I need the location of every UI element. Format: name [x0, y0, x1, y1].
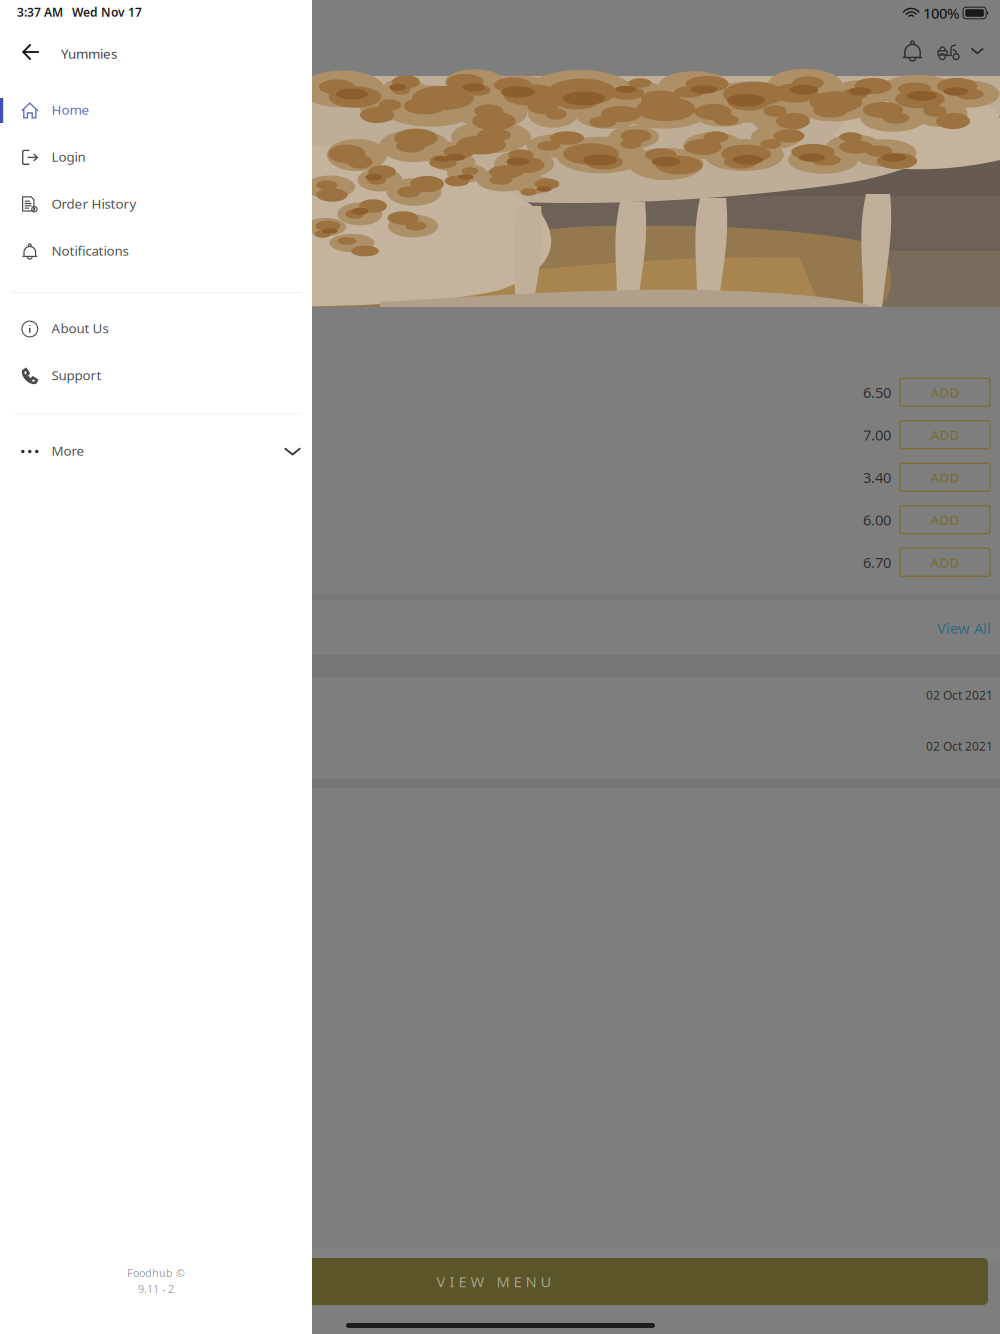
button[interactable]: ADD — [900, 463, 990, 491]
staticText: About Us — [52, 319, 109, 337]
staticText: Notifications — [52, 242, 129, 259]
button[interactable]: Expand — [971, 44, 984, 58]
button[interactable]: ADD — [900, 548, 990, 576]
button[interactable]: ADD — [900, 506, 990, 534]
button[interactable]: Notifications — [901, 39, 924, 62]
staticText: 6.50 — [863, 382, 891, 402]
button[interactable]: Back — [16, 37, 46, 67]
button[interactable]: About Us — [0, 305, 312, 352]
staticText: ADD — [930, 383, 959, 401]
staticText: 7.00 — [863, 425, 891, 444]
staticText: 02 Oct 2021 — [926, 687, 993, 703]
staticText: 100% — [923, 3, 959, 23]
staticText: 3.40 — [863, 467, 891, 487]
staticText: 02 Oct 2021 — [926, 738, 993, 754]
button[interactable]: Delivery — [937, 41, 961, 61]
staticText: 6.70 — [863, 552, 891, 572]
staticText: 9.11 - 2 — [138, 1282, 174, 1296]
staticText: V I E W M E N U — [436, 1272, 551, 1291]
button[interactable]: ADD — [900, 421, 990, 449]
staticText: 6.00 — [863, 510, 891, 529]
staticText: Yummies — [61, 45, 117, 62]
staticText: More — [52, 442, 85, 459]
staticText: ADD — [930, 511, 959, 529]
staticText: ADD — [930, 468, 959, 486]
button[interactable]: Order History — [0, 181, 312, 228]
button[interactable]: ADD — [900, 378, 990, 406]
button[interactable]: Home — [0, 87, 312, 134]
staticText: Home — [52, 101, 90, 118]
staticText: View All — [937, 618, 991, 638]
staticText: 3:37 AM — [17, 4, 63, 20]
button[interactable]: Notifications — [0, 228, 312, 275]
staticText: Foodhub © — [127, 1266, 185, 1280]
button[interactable]: 02 Oct 2021 — [0, 677, 1000, 728]
button[interactable]: More — [0, 428, 312, 475]
staticText: ADD — [930, 426, 959, 444]
button[interactable]: View All — [937, 609, 1000, 645]
button[interactable]: Support — [0, 352, 312, 399]
staticText: Order History — [52, 195, 137, 212]
button[interactable]: Login — [0, 134, 312, 181]
staticText: Login — [52, 148, 86, 165]
staticText: Wed Nov 17 — [72, 4, 142, 20]
staticText: ADD — [930, 553, 959, 571]
button[interactable]: V I E W M E N U — [0, 1258, 988, 1305]
button[interactable]: 02 Oct 2021 — [0, 728, 1000, 779]
staticText: Support — [52, 366, 102, 384]
